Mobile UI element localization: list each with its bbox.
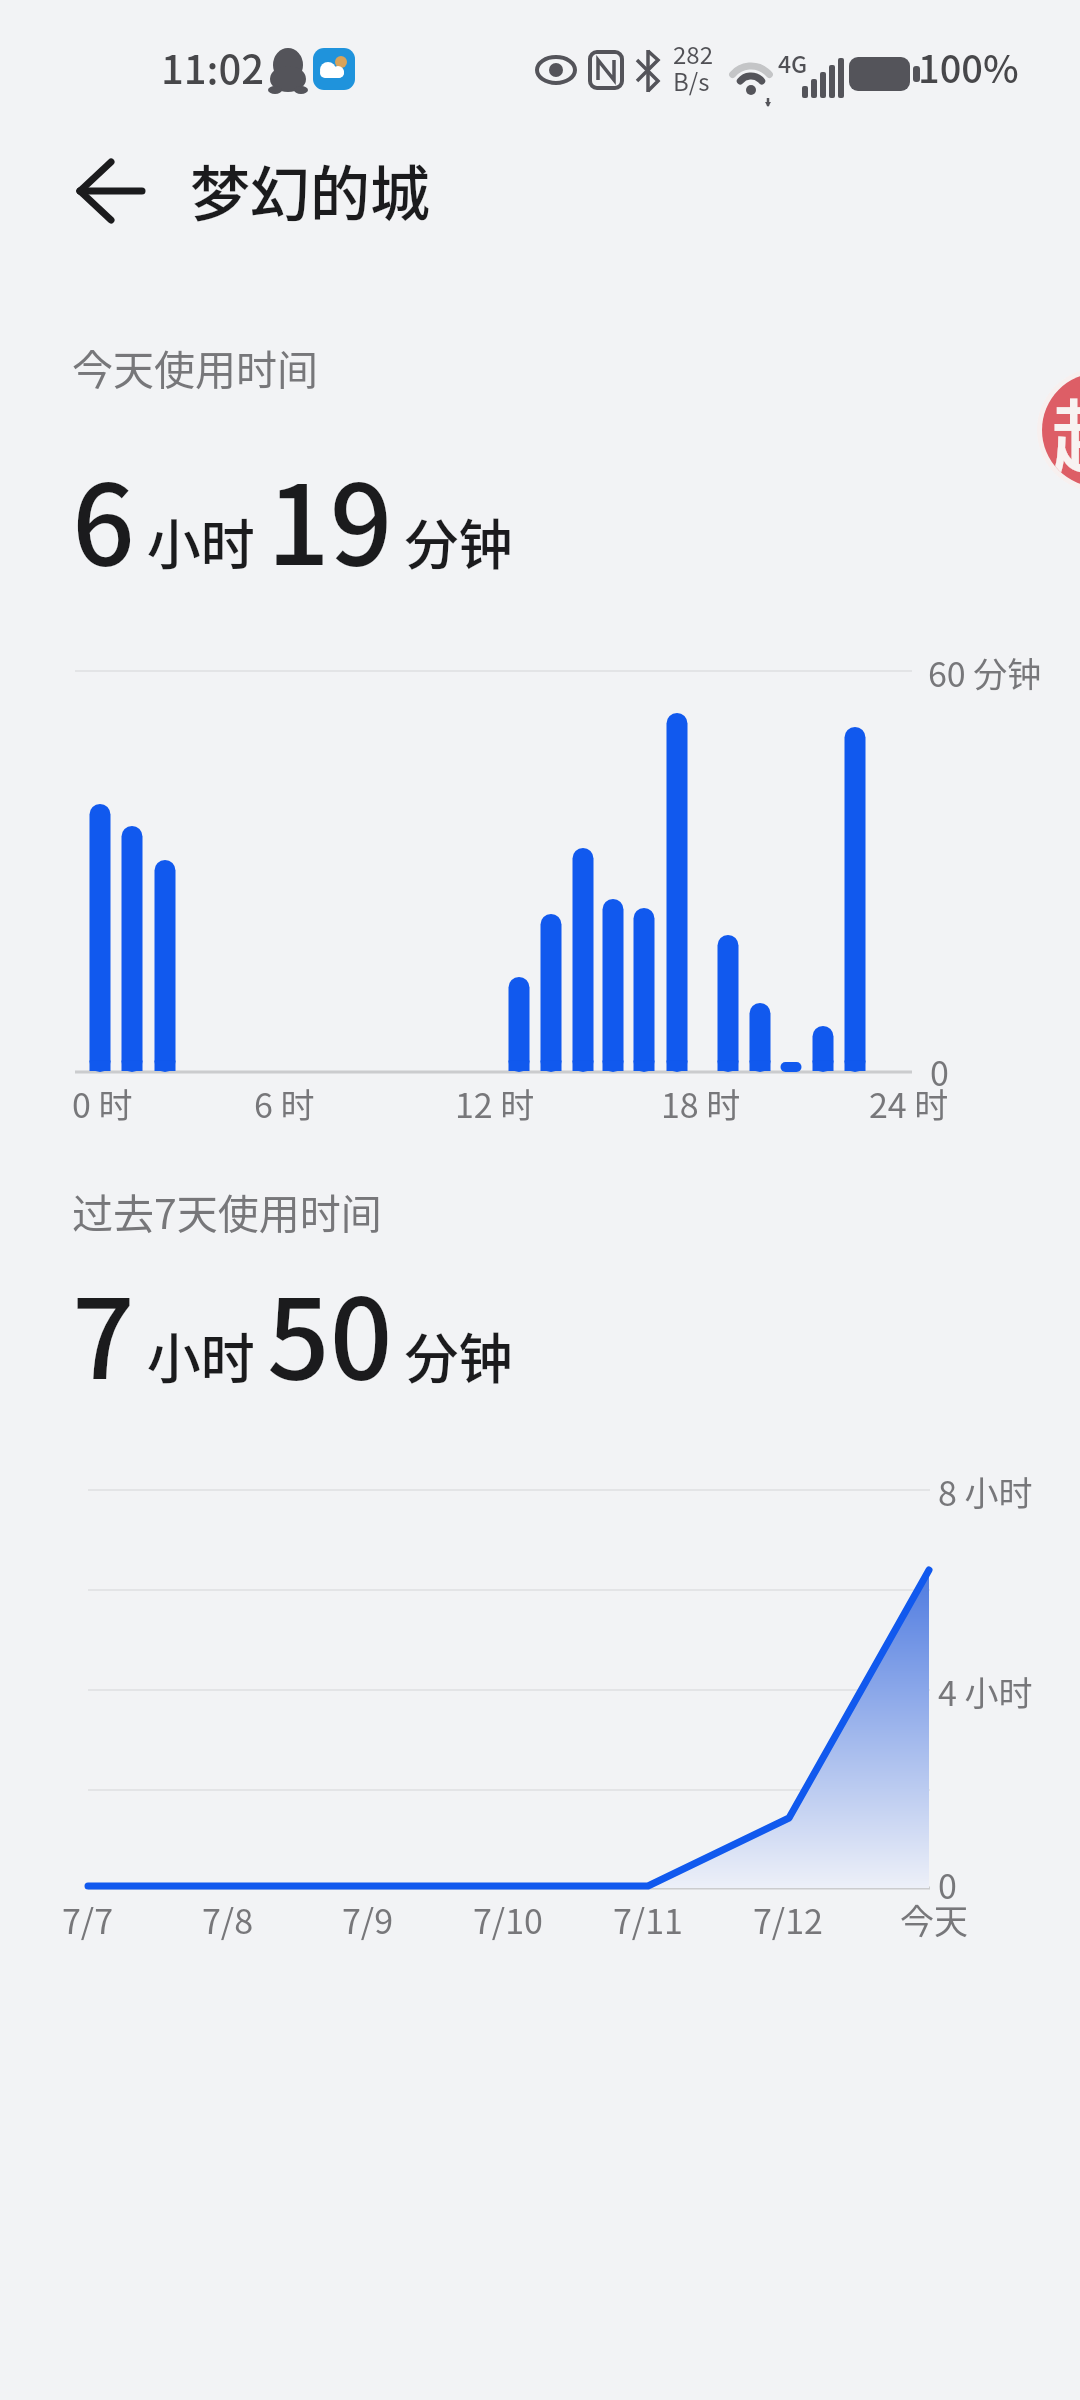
staticText: 7/10 — [473, 1895, 543, 1944]
staticText: 7/7 — [62, 1895, 114, 1944]
staticText: 60 分钟 — [928, 648, 1042, 697]
staticText: 12 时 — [455, 1079, 535, 1128]
staticText: 4 小时 — [938, 1667, 1033, 1716]
staticText: 6 小时 19 分钟 — [72, 437, 513, 596]
staticText: 过去7天使用时间 — [72, 1181, 382, 1240]
button[interactable]: 起 — [1037, 368, 1080, 492]
staticText: 8 小时 — [938, 1467, 1033, 1516]
staticText: 282 B/s — [673, 36, 713, 98]
staticText: 7/11 — [613, 1895, 683, 1944]
staticText: 今天 — [900, 1895, 968, 1944]
staticText: 24 时 — [869, 1079, 949, 1128]
staticText: 0 — [938, 1860, 957, 1909]
staticText: 0 时 — [72, 1079, 133, 1128]
staticText: 7/9 — [342, 1895, 394, 1944]
staticText: 今天使用时间 — [72, 337, 318, 396]
staticText: 6 时 — [254, 1079, 315, 1128]
staticText: 梦幻的城 — [190, 146, 430, 233]
staticText: 100% — [918, 39, 1019, 94]
staticText: 起 — [1051, 373, 1080, 487]
staticText: 7/12 — [753, 1895, 823, 1944]
staticText: 0 — [930, 1047, 949, 1096]
staticText: 7 小时 50 分钟 — [72, 1251, 513, 1410]
staticText: 7/8 — [202, 1895, 254, 1944]
staticText: 4G — [778, 46, 808, 79]
staticText: 11:02 — [161, 38, 265, 96]
button[interactable] — [56, 146, 166, 236]
staticText: 18 时 — [661, 1079, 741, 1128]
